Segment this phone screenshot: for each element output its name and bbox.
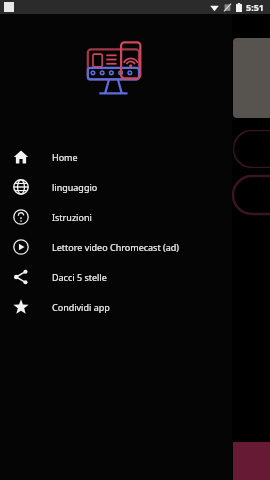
button[interactable]: Home [0, 142, 232, 172]
button[interactable]: linguaggio [0, 172, 232, 202]
staticText: 5:51 [246, 1, 264, 13]
button[interactable]: Dacci 5 stelle [0, 262, 232, 292]
staticText: Istruzioni [52, 211, 92, 223]
staticText: linguaggio [52, 181, 98, 193]
staticText: Home [52, 151, 78, 163]
staticText: Condividi app [52, 301, 110, 313]
button[interactable]: Condividi app [0, 292, 232, 322]
button[interactable]: Istruzioni [0, 202, 232, 232]
staticText: Dacci 5 stelle [52, 271, 107, 283]
staticText: Lettore video Chromecast (ad) [52, 241, 179, 253]
button[interactable]: Lettore video Chromecast (ad) [0, 232, 232, 262]
